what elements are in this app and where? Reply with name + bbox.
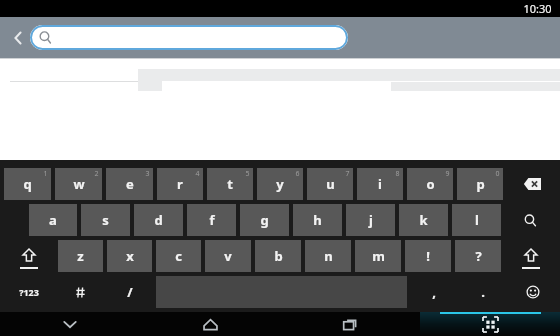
- button[interactable]: Delete: [507, 168, 556, 200]
- button[interactable]: f: [187, 204, 236, 236]
- button[interactable]: y: [257, 168, 303, 200]
- button[interactable]: s: [81, 204, 130, 236]
- staticText: 1: [43, 169, 48, 179]
- staticText: 0: [495, 169, 500, 179]
- button[interactable]: i: [357, 168, 403, 200]
- button[interactable]: Back: [5, 25, 31, 51]
- staticText: 10:30: [523, 1, 552, 16]
- button[interactable]: ?123: [4, 276, 54, 308]
- staticText: e: [126, 175, 134, 193]
- button[interactable]: Change language: [58, 276, 103, 308]
- button[interactable]: .: [460, 276, 505, 308]
- staticText: f: [209, 211, 215, 229]
- button[interactable]: w: [55, 168, 102, 200]
- staticText: ,: [432, 283, 436, 301]
- staticText: u: [326, 175, 335, 193]
- staticText: m: [372, 247, 385, 265]
- button[interactable]: e: [106, 168, 153, 200]
- button[interactable]: !: [405, 240, 451, 272]
- button[interactable]: ?: [455, 240, 501, 272]
- button[interactable]: k: [399, 204, 448, 236]
- staticText: b: [274, 247, 283, 265]
- staticText: l: [475, 211, 479, 229]
- staticText: y: [276, 175, 284, 193]
- button[interactable]: q: [4, 168, 51, 200]
- staticText: t: [227, 175, 233, 193]
- staticText: p: [476, 175, 485, 193]
- button[interactable]: Hide keyboard: [0, 312, 140, 336]
- button[interactable]: /: [107, 276, 152, 308]
- button[interactable]: a: [29, 204, 77, 236]
- staticText: 8: [395, 169, 400, 179]
- staticText: /: [127, 283, 133, 301]
- staticText: x: [126, 247, 134, 265]
- button[interactable]: x: [107, 240, 152, 272]
- button[interactable]: Home: [140, 312, 280, 336]
- staticText: ?: [475, 247, 482, 265]
- staticText: 5: [245, 169, 250, 179]
- staticText: r: [177, 175, 183, 193]
- staticText: h: [313, 211, 322, 229]
- button[interactable]: c: [156, 240, 201, 272]
- button[interactable]: d: [134, 204, 183, 236]
- staticText: 9: [445, 169, 450, 179]
- staticText: o: [426, 175, 435, 193]
- staticText: n: [324, 247, 333, 265]
- button[interactable]: Switch input method: [420, 312, 560, 336]
- button[interactable]: r: [157, 168, 203, 200]
- staticText: i: [378, 175, 382, 193]
- button[interactable]: n: [305, 240, 351, 272]
- button[interactable]: Shift: [4, 240, 54, 272]
- button[interactable]: o: [407, 168, 453, 200]
- staticText: 4: [195, 169, 200, 179]
- staticText: z: [77, 247, 84, 265]
- button[interactable]: m: [355, 240, 401, 272]
- staticText: w: [73, 175, 85, 193]
- button[interactable]: t: [207, 168, 253, 200]
- staticText: 6: [295, 169, 300, 179]
- staticText: .: [481, 283, 485, 301]
- button[interactable]: l: [452, 204, 501, 236]
- button[interactable]: b: [255, 240, 301, 272]
- button[interactable]: ,: [411, 276, 456, 308]
- button[interactable]: Search: [505, 204, 556, 236]
- staticText: c: [175, 247, 182, 265]
- staticText: v: [224, 247, 232, 265]
- button[interactable]: [30, 25, 348, 50]
- staticText: g: [260, 211, 269, 229]
- button[interactable]: p: [457, 168, 503, 200]
- staticText: 3: [145, 169, 150, 179]
- staticText: q: [23, 175, 32, 193]
- staticText: d: [154, 211, 163, 229]
- staticText: k: [419, 211, 428, 229]
- staticText: 2: [94, 169, 99, 179]
- staticText: ?123: [19, 286, 39, 298]
- button[interactable]: Recent apps: [280, 312, 420, 336]
- button[interactable]: h: [293, 204, 342, 236]
- staticText: j: [369, 211, 373, 229]
- button[interactable]: z: [58, 240, 103, 272]
- button[interactable]: Shift: [505, 240, 556, 272]
- button[interactable]: u: [307, 168, 353, 200]
- staticText: !: [426, 247, 430, 265]
- button[interactable]: v: [205, 240, 251, 272]
- staticText: 7: [345, 169, 350, 179]
- button[interactable]: Emoji: [509, 276, 556, 308]
- staticText: s: [102, 211, 109, 229]
- button[interactable]: j: [346, 204, 395, 236]
- button[interactable]: g: [240, 204, 289, 236]
- staticText: a: [49, 211, 57, 229]
